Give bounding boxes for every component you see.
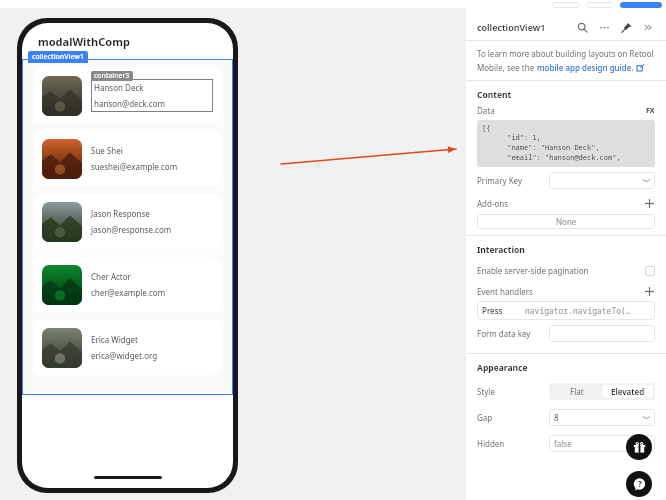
staticText: [{ bbox=[482, 123, 491, 133]
staticText: mobile app design guide. bbox=[537, 62, 634, 73]
staticText: "name": "Hanson Deck", bbox=[482, 143, 600, 153]
button[interactable]: Cher Actor bbox=[34, 257, 221, 312]
button[interactable] bbox=[586, 2, 614, 8]
staticText: Sue Shei bbox=[91, 145, 123, 156]
staticText: Cher Actor bbox=[91, 271, 131, 282]
staticText: Appearance bbox=[477, 362, 528, 374]
button[interactable]: Press bbox=[477, 301, 655, 320]
staticText: Content bbox=[477, 89, 512, 101]
button[interactable] bbox=[549, 325, 655, 342]
staticText: Erica Widget bbox=[91, 334, 138, 345]
button[interactable]: Enable server-side pagination bbox=[477, 260, 655, 281]
staticText: collectionView1 bbox=[477, 21, 546, 33]
button[interactable]: mobile app design guide. bbox=[537, 62, 634, 73]
staticText: Data bbox=[477, 105, 495, 116]
button[interactable]: Sue Shei bbox=[34, 131, 221, 186]
button[interactable] bbox=[552, 2, 580, 8]
button[interactable]: Add add-on bbox=[644, 198, 655, 209]
button[interactable]: Jason Response bbox=[34, 194, 221, 249]
staticText: sueshei@example.com bbox=[91, 161, 178, 172]
staticText: modalWithComp bbox=[38, 34, 130, 49]
button[interactable]: FX bbox=[646, 106, 655, 116]
staticText: Hidden bbox=[477, 438, 549, 449]
staticText: Style bbox=[477, 386, 549, 397]
staticText: navigator.navigateTo(… bbox=[525, 305, 631, 316]
staticText: Flat bbox=[570, 386, 584, 397]
staticText: "id": 1, bbox=[482, 133, 541, 143]
button[interactable]: Flat bbox=[551, 385, 602, 398]
staticText: cher@example.com bbox=[91, 287, 166, 298]
staticText: Elevated bbox=[611, 386, 645, 397]
button[interactable]: 8 bbox=[549, 409, 655, 426]
staticText: Form data key bbox=[477, 328, 549, 339]
staticText: false bbox=[554, 438, 572, 449]
button[interactable]: [{ bbox=[477, 120, 655, 167]
button[interactable]: Help bbox=[626, 471, 652, 497]
button[interactable] bbox=[620, 2, 662, 8]
button[interactable] bbox=[549, 172, 655, 189]
staticText: erica@widget.org bbox=[91, 350, 158, 361]
staticText: To learn more about building layouts on … bbox=[477, 48, 654, 59]
staticText: ? bbox=[638, 478, 642, 489]
staticText: Interaction bbox=[477, 244, 525, 256]
staticText: Add-ons bbox=[477, 198, 509, 209]
staticText: 8 bbox=[554, 412, 559, 423]
button[interactable]: Erica Widget bbox=[34, 320, 221, 375]
staticText: Gap bbox=[477, 412, 549, 423]
staticText: None bbox=[556, 216, 577, 227]
staticText: Primary Key bbox=[477, 175, 549, 186]
staticText: Hanson Deck bbox=[94, 82, 144, 93]
staticText: Mobile, see the bbox=[477, 62, 537, 73]
staticText: Enable server-side pagination bbox=[477, 265, 589, 276]
staticText: "email": "hanson@deck.com", bbox=[482, 153, 621, 163]
button[interactable]: Whatâ€™s new bbox=[626, 434, 652, 460]
staticText: jason@response.com bbox=[91, 224, 172, 235]
button[interactable]: More options bbox=[598, 21, 611, 34]
staticText: collectionView1 bbox=[32, 52, 84, 62]
staticText: Press bbox=[482, 305, 503, 316]
button[interactable]: Hanson Deck bbox=[34, 68, 221, 123]
staticText: hanson@deck.com bbox=[94, 98, 166, 109]
button[interactable]: Add event handler bbox=[644, 286, 655, 297]
button[interactable]: None bbox=[477, 214, 655, 229]
staticText: Event handlers bbox=[477, 286, 533, 297]
staticText: container3 bbox=[94, 71, 130, 81]
button[interactable]: Pin bbox=[620, 21, 633, 34]
button[interactable]: Search bbox=[576, 21, 589, 34]
button[interactable]: Elevated bbox=[602, 385, 653, 398]
staticText: Jason Response bbox=[91, 208, 150, 219]
staticText: FX bbox=[646, 106, 655, 116]
button[interactable]: Collapse bbox=[642, 21, 655, 34]
button[interactable]: false bbox=[549, 435, 655, 452]
